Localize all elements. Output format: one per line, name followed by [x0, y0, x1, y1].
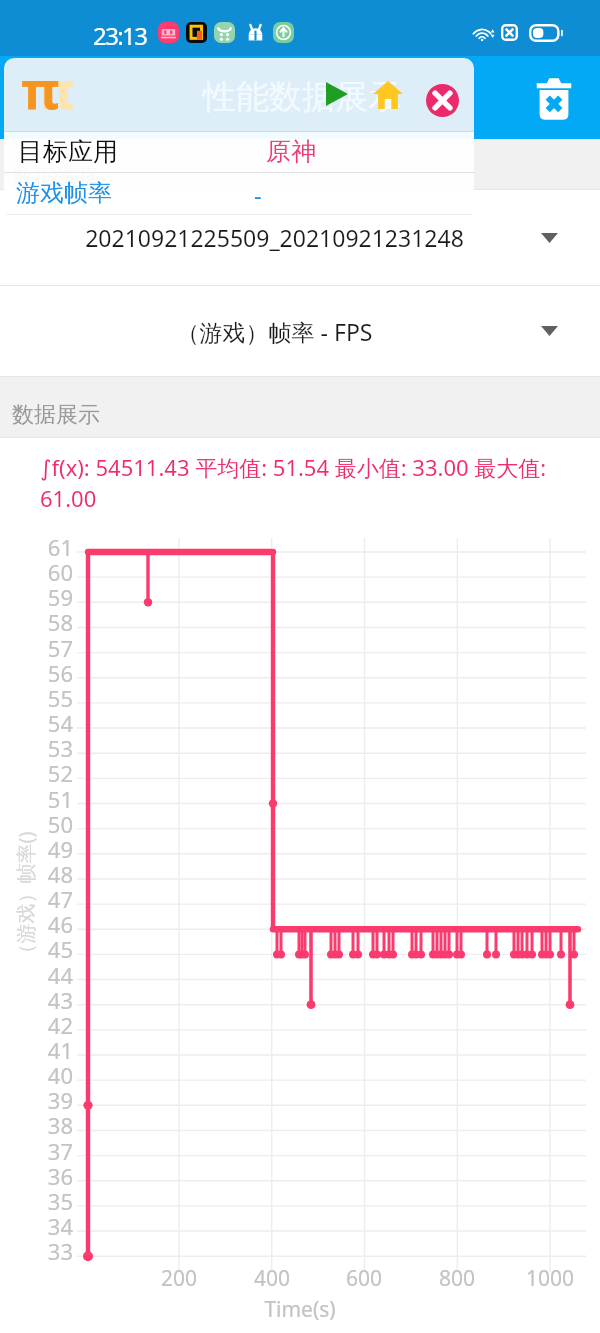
staticText: 58 [0, 607, 73, 637]
staticText: 400 [232, 1264, 312, 1293]
staticText: 43 [0, 985, 73, 1015]
staticText: 35 [0, 1186, 73, 1216]
staticText: 39 [0, 1085, 73, 1115]
staticText: π [21, 58, 60, 124]
staticText: 37 [0, 1136, 73, 1166]
staticText: 36 [0, 1161, 73, 1191]
staticText: 49 [0, 834, 73, 864]
staticText: 33 [0, 1236, 73, 1266]
staticText: 20210921225509_20210921231248 [0, 222, 549, 253]
staticText: 54 [0, 708, 73, 738]
staticText: （游戏）帧率() [11, 831, 38, 963]
staticText: 47 [0, 884, 73, 914]
button[interactable]: Close [426, 84, 459, 117]
staticText: 53 [0, 733, 73, 763]
staticText: 41 [0, 1035, 73, 1065]
staticText: 目标应用 [18, 136, 118, 167]
staticText: 55 [0, 683, 73, 713]
staticText: 1000 [510, 1264, 590, 1293]
button[interactable]: 20210921225509_20210921231248 [0, 190, 600, 285]
staticText: 45 [0, 934, 73, 964]
staticText: 23:13 [93, 19, 147, 52]
staticText: （游戏）帧率 - FPS [0, 316, 549, 347]
staticText: 50 [0, 809, 73, 839]
staticText: 60 [0, 557, 73, 587]
staticText: 性能数据展示 [203, 76, 401, 118]
staticText: π [36, 58, 75, 124]
staticText: 600 [324, 1264, 404, 1293]
staticText: 59 [0, 582, 73, 612]
staticText: 200 [139, 1264, 219, 1293]
staticText: 44 [0, 960, 73, 990]
staticText: 42 [0, 1010, 73, 1040]
button[interactable]: （游戏）帧率 - FPS [0, 286, 600, 376]
staticText: 46 [0, 909, 73, 939]
staticText: 52 [0, 758, 73, 788]
staticText: 数据展示 [12, 401, 100, 429]
staticText: 游戏帧率 [16, 178, 112, 208]
staticText: 38 [0, 1110, 73, 1140]
staticText: Time(s) [0, 1295, 600, 1324]
button[interactable]: Delete [525, 69, 583, 127]
staticText: 48 [0, 859, 73, 889]
staticText: 原神 [266, 136, 316, 167]
staticText: 34 [0, 1211, 73, 1241]
staticText: 61 [0, 532, 73, 562]
staticText: - [254, 178, 262, 211]
staticText: 56 [0, 658, 73, 688]
staticText: 800 [417, 1264, 497, 1293]
staticText: 51 [0, 784, 73, 814]
staticText: 57 [0, 633, 73, 663]
staticText: ∫f(x): 54511.43 平均值: 51.54 最小值: 33.00 最大… [40, 452, 580, 514]
staticText: 40 [0, 1060, 73, 1090]
staticText: 数据选择 [12, 164, 100, 192]
